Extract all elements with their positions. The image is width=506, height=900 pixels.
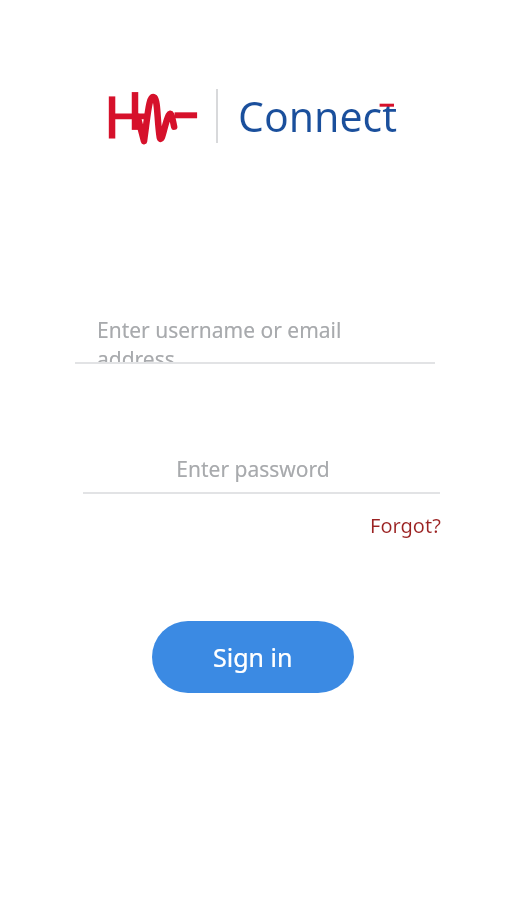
- staticText: Enter username or email address: [97, 316, 409, 362]
- button[interactable]: Forgot?: [366, 508, 445, 543]
- button[interactable]: Enter password: [0, 446, 506, 492]
- staticText: Sign in: [213, 640, 293, 674]
- button[interactable]: Sign in: [152, 621, 354, 693]
- staticText: Enter password: [176, 455, 330, 484]
- staticText: Forgot?: [370, 512, 441, 539]
- button[interactable]: Enter username or email address: [0, 316, 506, 362]
- staticText: Connect: [238, 88, 397, 144]
- other: HW Connect logo: [108, 91, 198, 145]
